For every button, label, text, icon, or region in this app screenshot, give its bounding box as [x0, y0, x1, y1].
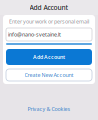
- staticText: Add Account: [33, 53, 65, 61]
- button[interactable]: Add Account: [6, 49, 92, 65]
- staticText: Create New Account: [24, 71, 73, 79]
- staticText: info@nano-svetaine.lt: [8, 31, 61, 38]
- staticText: Add Account: [29, 3, 68, 12]
- staticText: Enter your work or personal email: [9, 18, 89, 25]
- staticText: Privacy & Cookies: [27, 105, 70, 113]
- button[interactable]: Privacy & Cookies: [0, 105, 98, 113]
- button[interactable]: Create New Account: [6, 69, 92, 81]
